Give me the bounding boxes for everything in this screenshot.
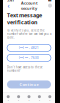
staticText: • (8, 99, 9, 103)
staticText: ‹ (7, 1, 9, 10)
staticText: To verify it's you, select the number wh… (7, 29, 51, 39)
button[interactable]: Accounts (13, 92, 24, 103)
button[interactable]: (•••) ••• - 4821 (7, 44, 51, 51)
button[interactable]: Profile (48, 4, 52, 8)
staticText: • (39, 99, 40, 103)
button[interactable]: Continue (7, 80, 51, 88)
staticText: • (18, 99, 19, 103)
staticText: ▮▮▮ (48, 0, 51, 1)
staticText: Account security (21, 0, 38, 11)
button[interactable]: Back (6, 3, 11, 8)
button[interactable]: (•••) ••• - 7630 (7, 54, 51, 61)
staticText: (•••) ••• - 7630 (19, 56, 39, 60)
staticText: Text message verification (7, 12, 42, 26)
staticText: Continue (19, 82, 38, 87)
button[interactable]: Rewards (34, 92, 45, 103)
button[interactable]: Pay (24, 92, 34, 103)
staticText: • (49, 99, 50, 103)
staticText: • (28, 99, 29, 103)
button[interactable]: More (45, 92, 55, 103)
staticText: (•••) ••• - 4821 (19, 46, 39, 50)
staticText: 9:41 (7, 0, 14, 3)
button[interactable]: Home (3, 92, 13, 103)
staticText: Don't have access to these numbers? (7, 65, 43, 72)
